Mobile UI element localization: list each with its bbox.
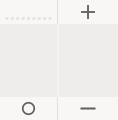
button[interactable]: Remove: [58, 97, 118, 120]
button[interactable]: Add: [58, 0, 118, 24]
button[interactable]: Tools: [0, 0, 57, 24]
button[interactable]: Record: [0, 97, 57, 120]
